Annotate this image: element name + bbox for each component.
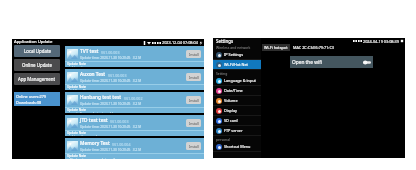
staticText: Volume <box>224 98 238 103</box>
staticText: Hanbang test test <box>80 94 122 101</box>
button[interactable]: IP Settings <box>213 50 261 59</box>
staticText: Update Note <box>67 62 87 66</box>
button[interactable]: Install <box>186 73 201 81</box>
staticText: Application Update <box>14 39 53 45</box>
button[interactable]: Local Update <box>14 45 60 57</box>
staticText: Update time: 2023-11-30 10:20:25 3.2 M <box>80 148 142 152</box>
staticText: Update Note <box>67 108 87 112</box>
staticText: Update time: 2023-11-30 10:20:25 3.2 M <box>80 102 142 106</box>
button[interactable]: Install <box>186 119 201 127</box>
button[interactable]: Volume <box>213 96 261 105</box>
staticText: Setting <box>216 71 228 76</box>
button[interactable]: FTP server <box>213 126 261 135</box>
staticText: add extension memory chain performance <box>67 158 128 159</box>
staticText: Settings <box>216 38 234 44</box>
button[interactable]: Open the wifi <box>290 56 373 68</box>
button[interactable]: Language & input <box>213 76 261 85</box>
staticText: V61.00.003 <box>110 119 129 124</box>
staticText: Install <box>189 144 199 149</box>
staticText: FTP server <box>224 128 243 133</box>
staticText: Wi-Fi hotspot <box>264 45 288 50</box>
staticText: Auxon Test <box>80 71 106 78</box>
button[interactable]: Online Update <box>14 59 60 71</box>
staticText: Online Update <box>22 62 52 68</box>
staticText: Display <box>224 108 237 113</box>
staticText: Update time: 2023-11-30 10:20:25 3.2 M <box>80 56 142 60</box>
staticText: personal <box>216 137 230 142</box>
staticText: property fix, spend minute problems <box>67 112 119 113</box>
staticText: Wireless and network <box>216 45 251 50</box>
staticText: Language & input <box>224 78 256 83</box>
staticText: Install <box>189 98 199 103</box>
button[interactable]: App Management <box>14 73 60 85</box>
button[interactable]: Wi-Fi hotspot <box>262 44 290 51</box>
staticText: MAC 2C:C3:E6:79:71:C3 <box>293 45 334 50</box>
staticText: Shortcut Menu <box>224 144 251 149</box>
staticText: Update time: 2023-11-30 10:20:25 3.2 M <box>80 79 142 83</box>
button[interactable]: Install <box>186 142 201 150</box>
button[interactable]: Install <box>186 50 201 58</box>
staticText: 2023-12-04 07:08:04 <box>162 40 198 45</box>
staticText: Install <box>189 121 199 126</box>
staticText: Date/Time <box>224 88 243 93</box>
staticText: IP Settings <box>224 52 244 57</box>
staticText: Update time: 2023-11-30 10:20:25 3.2 M <box>80 125 142 129</box>
staticText: Update Note <box>67 154 87 158</box>
staticText: Wi-Fi/Hot Net <box>224 62 248 67</box>
staticText: update option sound usage <box>67 135 106 136</box>
staticText: TVT test <box>80 48 99 55</box>
staticText: SD card <box>224 118 238 123</box>
button[interactable]: Install <box>186 96 201 104</box>
button[interactable]: Wi-Fi/Hot Net <box>213 60 261 69</box>
button[interactable]: Shortcut Menu <box>213 142 261 151</box>
staticText: Online users:279 <box>16 94 46 99</box>
staticText: Update Note <box>67 131 87 135</box>
button[interactable]: SD card <box>213 116 261 125</box>
staticText: V61.00.003 <box>101 50 120 55</box>
staticText: Install <box>189 75 199 80</box>
staticText: patch/ins v46 <box>67 89 86 90</box>
staticText: Open the wifi <box>292 59 323 66</box>
staticText: V61.00.003 <box>108 73 127 78</box>
button[interactable]: Display <box>213 106 261 115</box>
staticText: V61.00.004 <box>112 142 131 147</box>
button[interactable]: Date/Time <box>213 86 261 95</box>
staticText: App Management <box>18 76 56 82</box>
staticText: Downloads:08 <box>16 100 42 105</box>
button[interactable]: Online users:279 <box>14 92 60 106</box>
staticText: 2024-04-19 03:08:39 <box>363 39 399 44</box>
staticText: V61.00.002 <box>124 96 143 101</box>
staticText: Memory Test <box>80 140 110 147</box>
staticText: Install <box>189 52 199 57</box>
staticText: Update Note <box>67 85 87 89</box>
staticText: Local Update <box>24 48 51 54</box>
staticText: update note <box>67 66 85 67</box>
staticText: JTD test test <box>80 117 108 124</box>
